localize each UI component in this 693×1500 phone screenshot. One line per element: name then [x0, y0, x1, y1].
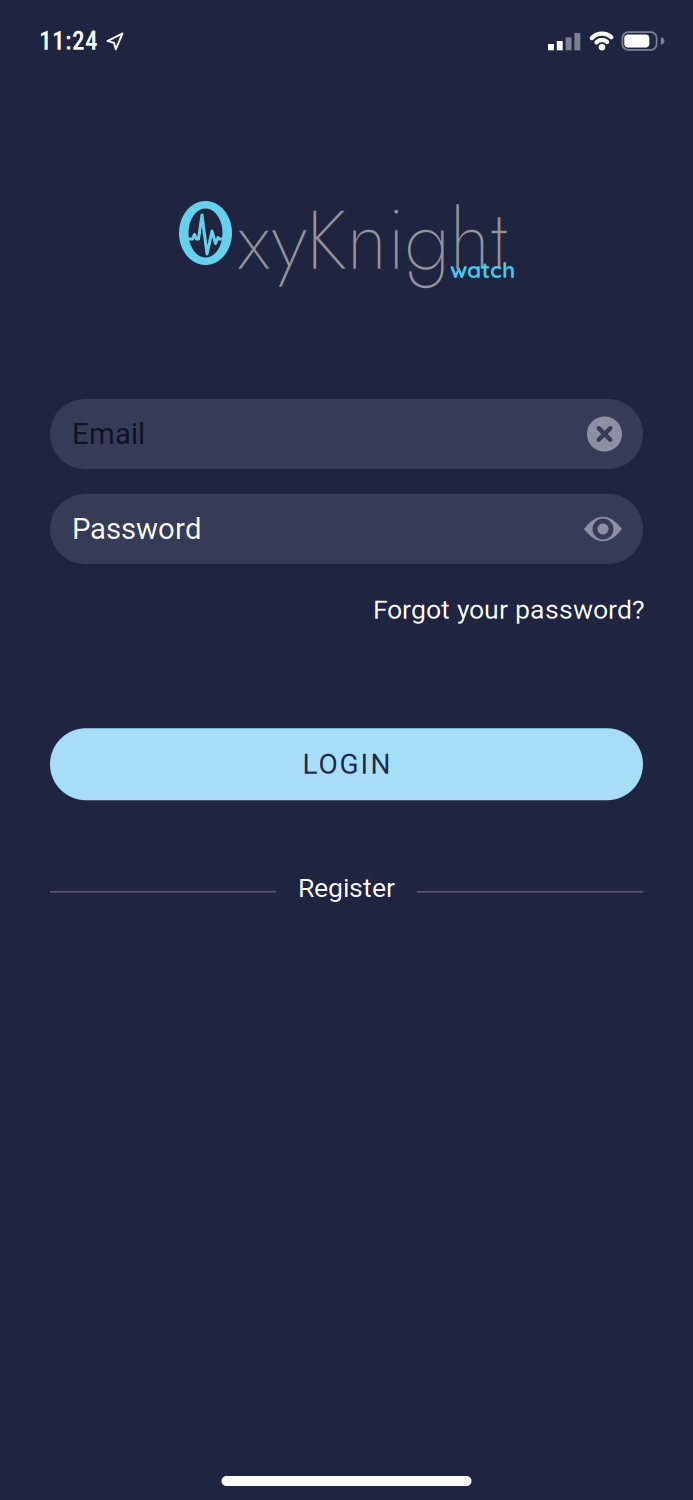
staticText: watch [450, 255, 515, 284]
staticText: Register [298, 872, 395, 904]
button[interactable]: Forgot your password? [373, 594, 645, 625]
staticText: Email [72, 417, 145, 451]
staticText: Password [72, 512, 202, 546]
staticText: LOGIN [302, 748, 390, 781]
button[interactable]: Register [298, 872, 395, 904]
staticText: 11:24 [39, 26, 98, 56]
button[interactable]: LOGIN [50, 728, 643, 800]
button[interactable]: Show password [584, 516, 622, 542]
button[interactable]: Clear text [587, 416, 622, 451]
staticText: Forgot your password? [373, 594, 645, 625]
staticText: xyKnight [237, 180, 507, 300]
